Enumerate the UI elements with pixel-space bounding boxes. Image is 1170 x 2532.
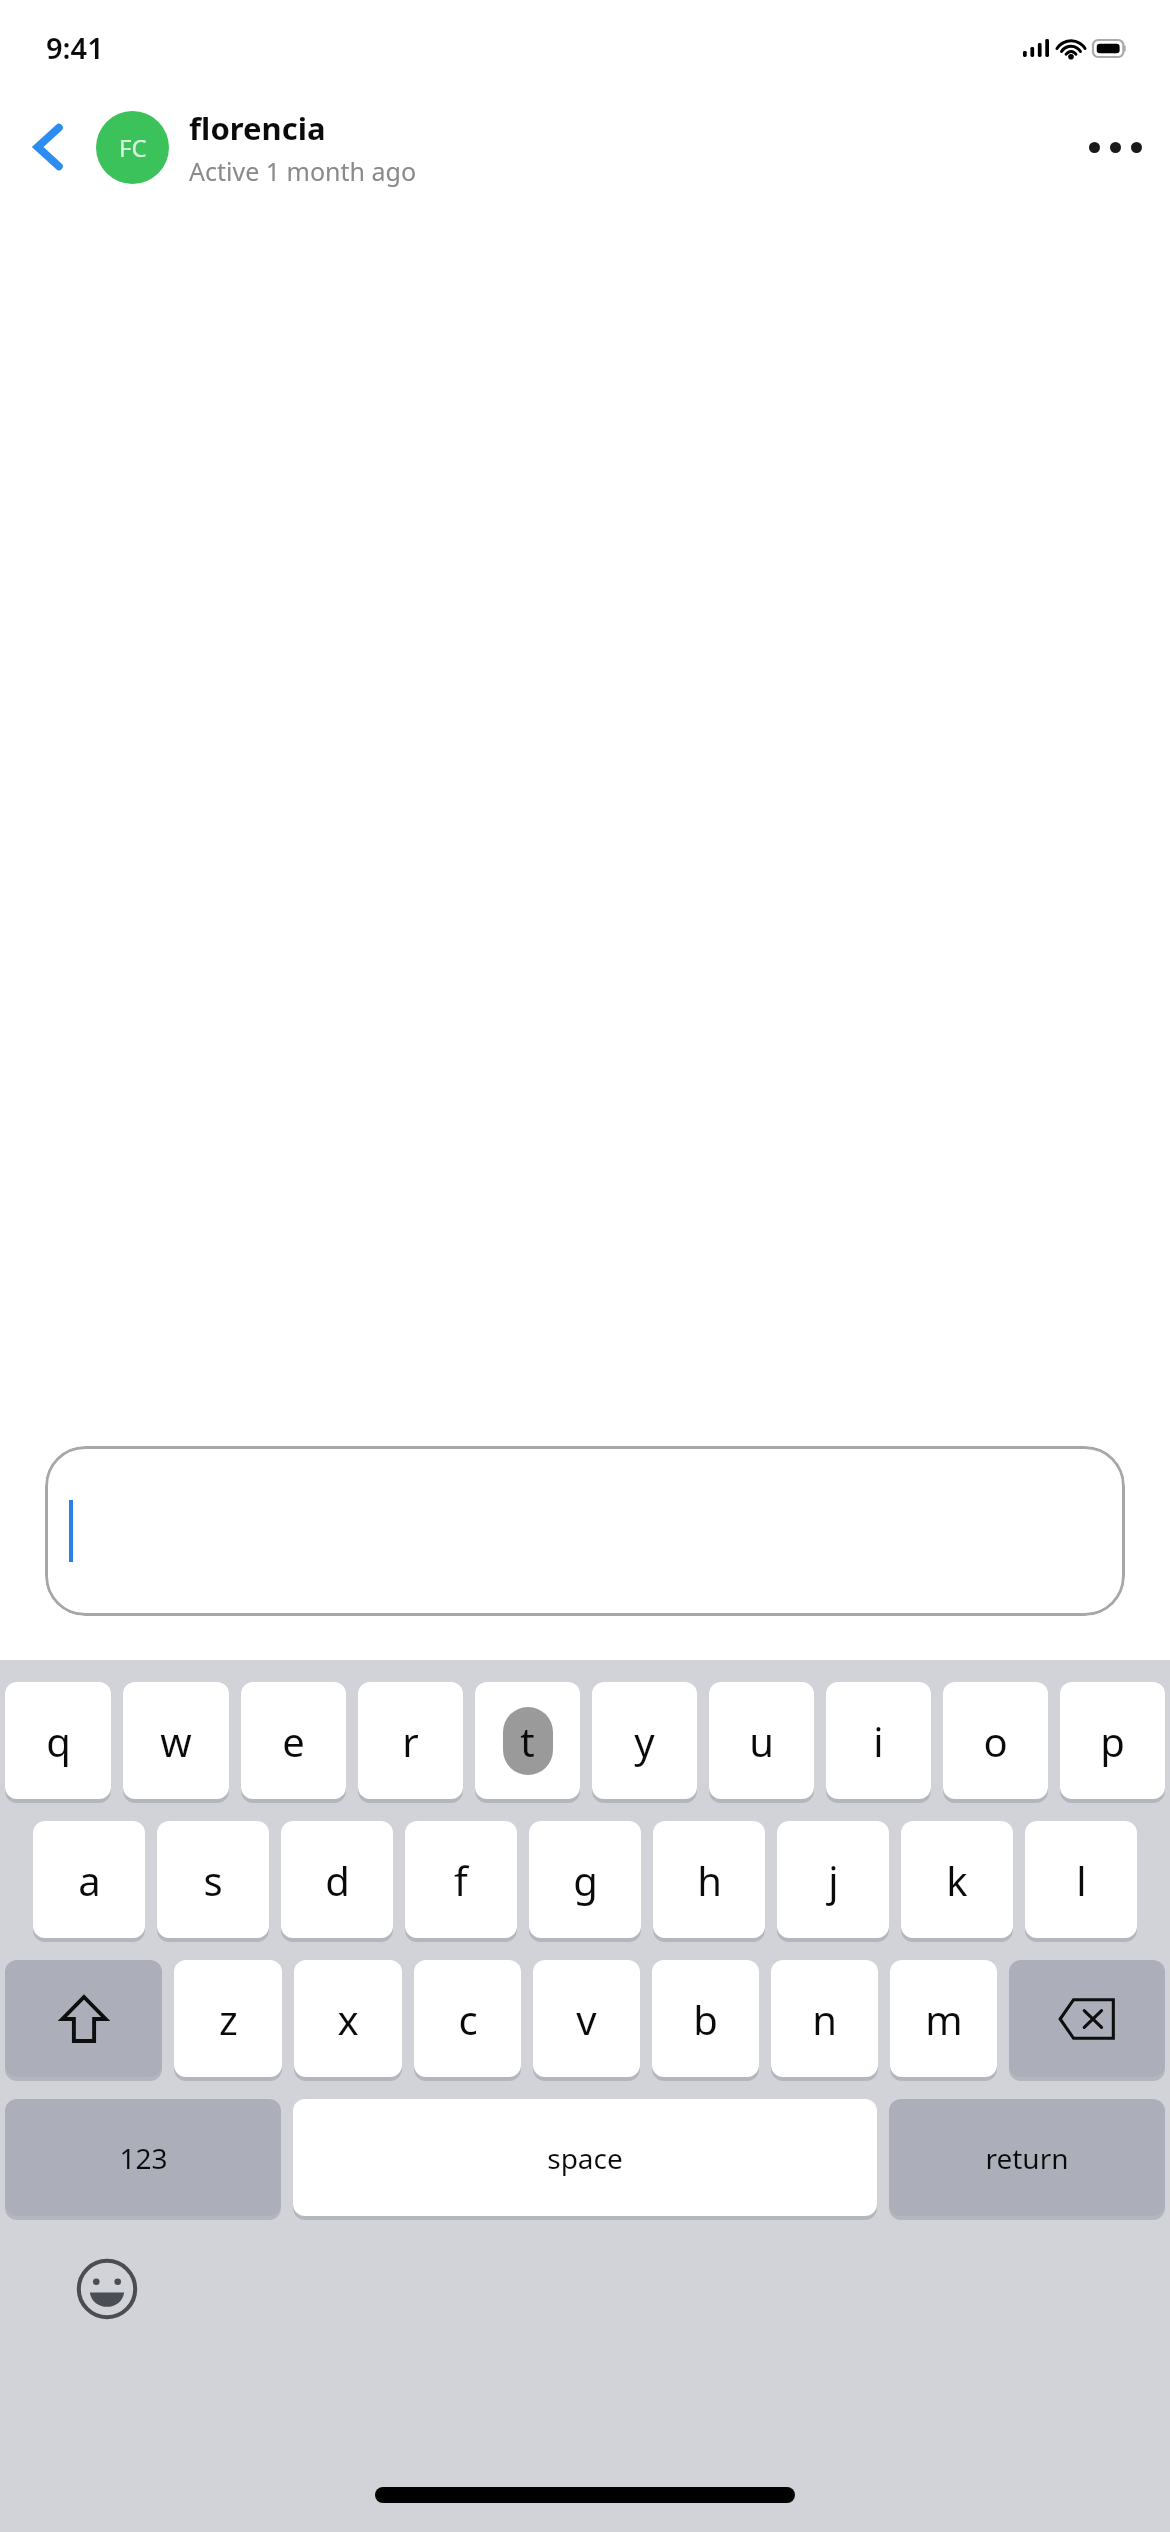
staticText: j [828, 1853, 839, 1907]
button[interactable]: n [771, 1960, 878, 2077]
staticText: f [454, 1853, 468, 1907]
staticText: k [946, 1853, 968, 1907]
button[interactable]: Backspace [1009, 1960, 1165, 2077]
staticText: g [573, 1853, 598, 1907]
staticText: q [46, 1714, 71, 1768]
staticText: return [985, 2139, 1069, 2177]
staticText: Active 1 month ago [189, 154, 417, 188]
button[interactable]: p [1060, 1682, 1165, 1799]
button[interactable]: Back [0, 96, 96, 198]
button[interactable]: z [174, 1960, 282, 2077]
staticText: s [203, 1853, 223, 1907]
button[interactable]: Emoji [72, 2254, 142, 2324]
button[interactable]: l [1025, 1821, 1137, 1938]
button[interactable]: More options [1060, 96, 1170, 198]
button[interactable]: a [33, 1821, 145, 1938]
button[interactable]: Shift [5, 1960, 162, 2077]
staticText: h [697, 1853, 722, 1907]
staticText: v [576, 1992, 597, 2046]
button[interactable]: t [475, 1682, 580, 1799]
staticText: u [749, 1714, 774, 1768]
staticText: o [983, 1714, 1008, 1768]
button[interactable]: d [281, 1821, 393, 1938]
staticText: i [873, 1714, 884, 1768]
staticText: l [1076, 1853, 1087, 1907]
staticText: n [812, 1992, 837, 2046]
button[interactable]: e [241, 1682, 346, 1799]
staticText: d [325, 1853, 350, 1907]
button[interactable]: r [358, 1682, 463, 1799]
staticText: a [78, 1853, 101, 1907]
staticText: b [693, 1992, 718, 2046]
button[interactable]: i [826, 1682, 931, 1799]
button[interactable]: g [529, 1821, 641, 1938]
button[interactable]: o [943, 1682, 1048, 1799]
button[interactable]: space [293, 2099, 877, 2216]
staticText: t [520, 1714, 535, 1768]
button[interactable]: m [890, 1960, 997, 2077]
button[interactable]: s [157, 1821, 269, 1938]
button[interactable]: v [533, 1960, 640, 2077]
button[interactable]: h [653, 1821, 765, 1938]
button[interactable]: x [294, 1960, 402, 2077]
staticText: y [634, 1714, 655, 1768]
button[interactable]: 123 [5, 2099, 281, 2216]
button[interactable]: c [414, 1960, 521, 2077]
button[interactable]: y [592, 1682, 697, 1799]
staticText: e [282, 1714, 305, 1768]
staticText: c [458, 1992, 478, 2046]
staticText: p [1100, 1714, 1125, 1768]
staticText: space [547, 2139, 623, 2177]
staticText: florencia [189, 107, 326, 149]
staticText: r [402, 1714, 419, 1768]
button[interactable] [45, 1446, 1125, 1616]
button[interactable]: j [777, 1821, 889, 1938]
button[interactable]: q [5, 1682, 111, 1799]
staticText: 9:41 [46, 28, 104, 67]
staticText: 123 [119, 2139, 168, 2177]
button[interactable]: b [652, 1960, 759, 2077]
button[interactable]: k [901, 1821, 1013, 1938]
button[interactable]: u [709, 1682, 814, 1799]
staticText: x [337, 1992, 359, 2046]
button[interactable]: return [889, 2099, 1165, 2216]
staticText: z [219, 1992, 238, 2046]
button[interactable]: f [405, 1821, 517, 1938]
staticText: FC [119, 131, 147, 164]
button[interactable]: florencia [189, 107, 1060, 188]
staticText: m [925, 1992, 963, 2046]
button[interactable]: w [123, 1682, 229, 1799]
staticText: w [160, 1714, 192, 1768]
